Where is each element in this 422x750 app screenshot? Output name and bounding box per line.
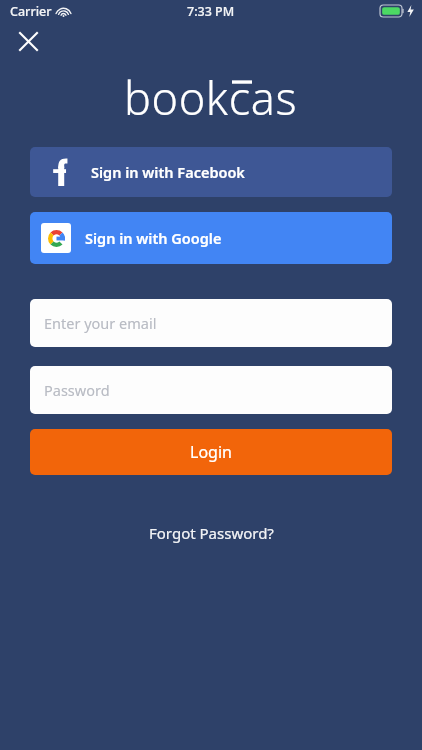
button[interactable]: Sign in with Google [30, 212, 392, 264]
button[interactable]: Forgot Password? [137, 517, 286, 549]
staticText: Login [190, 441, 232, 463]
staticText: Password [44, 380, 110, 400]
staticText: Sign in with Google [85, 228, 222, 248]
staticText: Enter your email [44, 313, 157, 333]
button[interactable]: Sign in with Facebook [30, 147, 392, 197]
staticText: Forgot Password? [149, 523, 274, 543]
staticText: bookcas [124, 67, 298, 128]
button[interactable]: Close [12, 25, 44, 57]
button[interactable]: Password [30, 366, 392, 414]
staticText: 7:33 PM [187, 3, 235, 20]
staticText: Sign in with Facebook [91, 162, 245, 182]
button[interactable]: Login [30, 429, 392, 475]
button[interactable]: Enter your email [30, 299, 392, 347]
staticText: Carrier [10, 3, 52, 20]
